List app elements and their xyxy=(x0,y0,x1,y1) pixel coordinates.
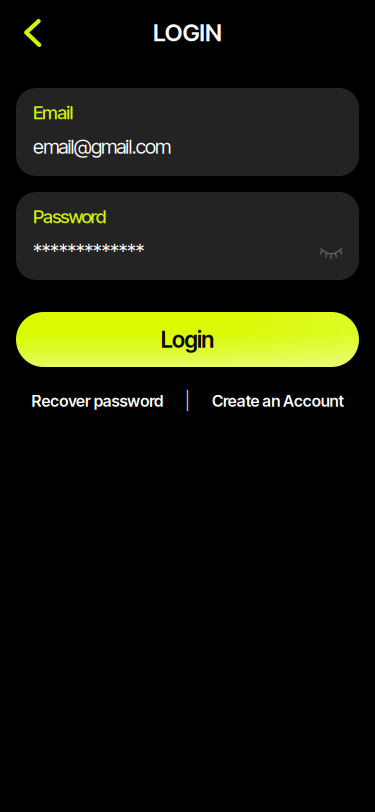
staticText: LOGIN xyxy=(153,18,222,47)
button[interactable]: Login xyxy=(16,312,359,367)
button[interactable]: Recover password xyxy=(31,391,163,411)
staticText: Recover password xyxy=(31,391,163,411)
staticText: email@gmail.com xyxy=(33,134,171,159)
staticText: ************* xyxy=(33,238,145,263)
staticText: Email xyxy=(33,101,73,124)
staticText: Create an Account xyxy=(212,391,343,411)
button[interactable]: Create an Account xyxy=(212,391,343,411)
button[interactable]: Show password xyxy=(320,242,342,259)
staticText: | xyxy=(185,390,190,411)
button[interactable]: Back xyxy=(0,6,55,52)
staticText: Login xyxy=(161,326,214,353)
staticText: Password xyxy=(33,205,107,228)
